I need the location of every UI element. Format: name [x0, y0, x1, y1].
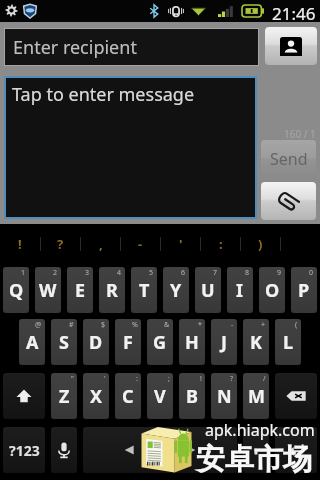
button[interactable]: Voice input [51, 427, 77, 473]
staticText: L [283, 330, 294, 355]
staticText: I [236, 278, 244, 303]
staticText: + [261, 320, 266, 330]
button[interactable]: : [201, 233, 240, 255]
staticText: , [99, 235, 103, 253]
staticText: " [71, 374, 74, 384]
staticText: ! [18, 235, 22, 253]
staticText: W [39, 278, 57, 303]
staticText: $ [101, 320, 106, 330]
button[interactable]: L [275, 319, 301, 365]
button[interactable]: X [83, 373, 109, 419]
staticText: * [198, 320, 202, 330]
button[interactable]: Enter recipient [5, 29, 258, 65]
button[interactable]: E [67, 267, 93, 313]
button[interactable]: Return [275, 427, 317, 473]
button[interactable]: A [19, 319, 45, 365]
staticText: @ [35, 320, 42, 330]
button[interactable]: Send [261, 140, 316, 177]
staticText: K [250, 330, 262, 355]
staticText: ! [200, 374, 202, 384]
staticText: 3 [85, 268, 90, 278]
staticText: U [201, 278, 215, 303]
staticText: E [75, 278, 86, 303]
staticText: N [217, 384, 232, 409]
button[interactable]: D [83, 319, 109, 365]
button[interactable]: I [227, 267, 253, 313]
staticText: P [298, 278, 310, 303]
button[interactable]: S [51, 319, 77, 365]
button[interactable]: Tap to enter message [6, 78, 255, 217]
staticText: F [123, 330, 133, 355]
staticText: 8 [245, 268, 250, 278]
button[interactable]: ' [161, 233, 200, 255]
staticText: 1 [21, 268, 26, 278]
staticText: 21:46 [272, 2, 316, 24]
button[interactable]: T [131, 267, 157, 313]
staticText: ) [258, 235, 263, 253]
staticText: 160 / 1 [284, 127, 316, 139]
button[interactable]: M [243, 373, 269, 419]
staticText: Tap to enter message [12, 82, 195, 107]
button[interactable]: Attach [261, 182, 316, 220]
staticText: B [186, 384, 198, 409]
staticText: T [139, 278, 150, 303]
button[interactable]: Period [243, 427, 269, 473]
button[interactable]: O [259, 267, 285, 313]
staticText: # [69, 320, 74, 330]
button[interactable]: R [99, 267, 125, 313]
staticText: ?123 [9, 441, 40, 460]
staticText: O [265, 278, 280, 303]
staticText: ? [230, 374, 234, 384]
button[interactable]: Z [51, 373, 77, 419]
button[interactable]: V [147, 373, 173, 419]
button[interactable]: F [115, 319, 141, 365]
staticText: C [122, 384, 134, 409]
staticText: D [89, 330, 103, 355]
staticText: - [231, 320, 234, 330]
staticText: Send [270, 148, 308, 170]
button[interactable]: ! [0, 233, 40, 255]
button[interactable]: P [291, 267, 317, 313]
staticText: 0 [309, 268, 314, 278]
staticText: V [154, 384, 166, 409]
button[interactable]: ? [41, 233, 80, 255]
button[interactable]: H [179, 319, 205, 365]
button[interactable]: J [211, 319, 237, 365]
button[interactable]: W [35, 267, 61, 313]
staticText: & [164, 320, 170, 330]
staticText: / [263, 374, 266, 384]
staticText: S [59, 330, 69, 355]
staticText: J [221, 330, 227, 355]
button[interactable]: U [195, 267, 221, 313]
staticText: 7 [213, 268, 218, 278]
button[interactable]: - [121, 233, 160, 255]
staticText: 5 [149, 268, 154, 278]
button[interactable]: Space [83, 427, 237, 473]
button[interactable]: G [147, 319, 173, 365]
staticText: - [138, 235, 143, 253]
button[interactable]: Pick contact [265, 27, 317, 65]
button[interactable]: Delete [275, 373, 317, 419]
staticText: 安卓市场 [196, 441, 312, 478]
button[interactable]: N [211, 373, 237, 419]
button[interactable]: Q [3, 267, 29, 313]
staticText: Q [9, 278, 24, 303]
staticText: apk.hiapk.com [205, 419, 315, 441]
staticText: 6 [181, 268, 186, 278]
staticText: Enter recipient [13, 35, 137, 60]
staticText: ? [57, 235, 64, 253]
button[interactable]: ) [241, 233, 280, 255]
staticText: H [185, 330, 199, 355]
button[interactable]: K [243, 319, 269, 365]
button[interactable]: Shift [3, 373, 45, 419]
button[interactable]: Y [163, 267, 189, 313]
button[interactable]: B [179, 373, 205, 419]
staticText: ' [179, 235, 183, 253]
staticText: R [106, 278, 118, 303]
staticText: G [153, 330, 167, 355]
button[interactable]: ?123 [3, 427, 45, 473]
staticText: ; [168, 374, 170, 384]
button[interactable]: C [115, 373, 141, 419]
button[interactable]: , [81, 233, 120, 255]
